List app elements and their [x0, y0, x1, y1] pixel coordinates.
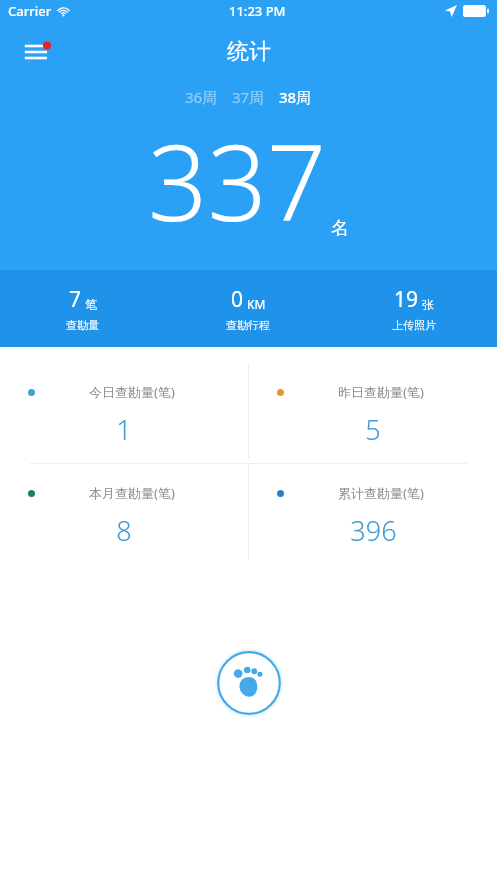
staticText: 0 [231, 285, 244, 314]
staticText: Carrier [8, 2, 52, 20]
button[interactable]: 37周 [225, 84, 272, 110]
button[interactable]: 7 [0, 270, 165, 347]
button[interactable]: 累计查勘量(笔) [249, 464, 497, 564]
staticText: 累计查勘量(笔) [338, 484, 424, 502]
staticText: 名 [331, 217, 349, 240]
staticText: 337 [148, 110, 327, 252]
staticText: 38周 [279, 87, 312, 107]
staticText: 统计 [227, 38, 271, 66]
button[interactable]: 今日查勘量(笔) [0, 363, 248, 463]
staticText: 36周 [185, 87, 218, 107]
staticText: 查勘量 [66, 318, 99, 332]
button[interactable]: Track footprints [214, 648, 284, 718]
button[interactable]: Menu [16, 30, 60, 74]
button[interactable]: 本月查勘量(笔) [0, 464, 248, 564]
button[interactable]: 昨日查勘量(笔) [249, 363, 497, 463]
staticText: KM [247, 296, 266, 312]
staticText: 昨日查勘量(笔) [338, 383, 424, 401]
button[interactable]: 0 [165, 270, 331, 347]
staticText: 11:23 PM [229, 2, 286, 20]
staticText: 张 [422, 297, 434, 312]
staticText: 查勘行程 [226, 318, 270, 332]
staticText: 396 [350, 512, 397, 549]
staticText: 7 [69, 285, 82, 314]
staticText: 今日查勘量(笔) [89, 383, 175, 401]
button[interactable]: 38周 [272, 84, 319, 110]
button[interactable]: 36周 [178, 84, 225, 110]
button[interactable]: 19 [331, 270, 497, 347]
staticText: 1 [116, 411, 132, 448]
staticText: 8 [116, 512, 132, 549]
staticText: 笔 [85, 297, 97, 312]
staticText: 上传照片 [392, 318, 436, 332]
staticText: 本月查勘量(笔) [89, 484, 175, 502]
staticText: 5 [365, 411, 381, 448]
staticText: 37周 [232, 87, 265, 107]
staticText: 19 [394, 285, 419, 314]
